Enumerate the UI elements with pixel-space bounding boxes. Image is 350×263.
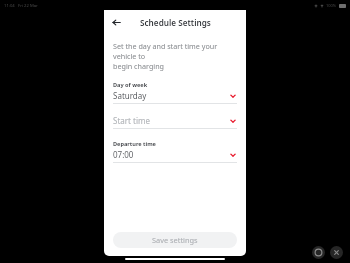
staticText: 11:04: [4, 3, 15, 9]
staticText: Save settings: [152, 235, 198, 245]
staticText: Start time: [113, 115, 229, 126]
staticText: Set the day and start time your vehicle …: [113, 41, 237, 71]
staticText: 100%: [326, 3, 337, 8]
staticText: 07:00: [113, 149, 229, 160]
button[interactable]: Save settings: [113, 232, 237, 248]
button[interactable]: Close: [330, 246, 343, 259]
staticText: Departure time: [113, 140, 156, 148]
staticText: Saturday: [113, 90, 229, 101]
staticText: Day of week: [113, 81, 148, 89]
button[interactable]: Back: [106, 12, 126, 32]
staticText: Schedule Settings: [140, 17, 211, 28]
button[interactable]: Day of week: [113, 81, 237, 104]
staticText: Fri 22 Mar: [18, 3, 38, 9]
button[interactable]: Departure time: [113, 140, 237, 163]
button[interactable]: Start time: [113, 115, 237, 129]
button[interactable]: Rotate: [312, 246, 325, 259]
